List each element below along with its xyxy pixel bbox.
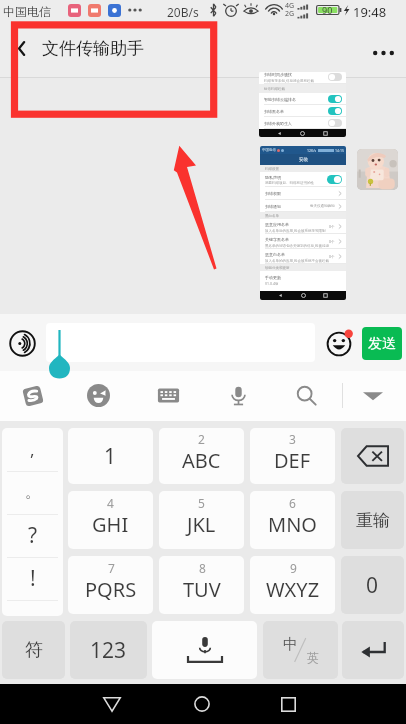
button[interactable]: Hide keyboard — [358, 381, 387, 410]
staticText: 20B/s — [167, 4, 199, 20]
staticText: 每天仅通知确知 — [310, 204, 335, 208]
button[interactable]: 5 — [159, 491, 244, 549]
staticText: 2G — [285, 9, 295, 19]
staticText: 扫描设置 — [265, 167, 279, 171]
button[interactable]: Back — [88, 684, 135, 724]
button[interactable]: Voice input — [6, 327, 38, 359]
staticText: 扫描外构陌生人 — [264, 121, 292, 126]
staticText: 中国电信 — [262, 148, 276, 152]
staticText: 手动更新 — [265, 275, 281, 280]
staticText: 恶意应用名单 — [265, 222, 289, 227]
staticText: JKL — [187, 511, 216, 538]
button[interactable]: 8 — [159, 556, 244, 614]
staticText: 3 — [289, 431, 296, 447]
button[interactable]: 6 — [250, 491, 335, 549]
staticText: 0个 — [329, 239, 335, 244]
button[interactable]: Emoji — [324, 327, 356, 359]
staticText: 中国电信 — [3, 4, 51, 19]
staticText: 安装 — [299, 157, 308, 163]
staticText: GHI — [92, 511, 129, 538]
staticText: 9 — [290, 560, 297, 576]
button[interactable]: 0 — [341, 556, 404, 614]
staticText: 智能分类和更新 — [265, 266, 290, 270]
staticText: 0个 — [329, 254, 335, 259]
staticText: 短信扫描拦截 — [264, 87, 285, 91]
staticText: 发送 — [368, 335, 396, 353]
staticText: 符 — [25, 639, 43, 662]
staticText: 中 — [283, 635, 298, 654]
staticText: 文件传输助手 — [42, 38, 144, 59]
button[interactable]: 发送 — [362, 327, 402, 360]
staticText: 14:15 — [335, 148, 344, 153]
button[interactable]: Enter — [342, 621, 404, 679]
button[interactable]: 4 — [68, 491, 153, 549]
staticText: 关键字黑名单 — [265, 237, 289, 242]
staticText: 123 — [90, 636, 127, 665]
staticText: ! — [30, 564, 36, 593]
staticText: V1.0.4版 — [265, 281, 279, 286]
button[interactable]: Space — [152, 621, 257, 679]
button[interactable]: More options — [360, 30, 406, 76]
button[interactable]: 2 — [159, 428, 244, 484]
button[interactable]: 符 — [2, 621, 65, 679]
staticText: 12K/s — [307, 148, 317, 153]
staticText: 扫描时同步骚扰 — [264, 72, 292, 77]
button[interactable]: 1 — [68, 428, 153, 484]
staticText: ? — [28, 521, 38, 550]
staticText: ABC — [182, 447, 221, 474]
staticText: 加入名单的的应用,将会被系统不会被拦截 — [265, 258, 329, 263]
staticText: MNO — [268, 511, 317, 538]
staticText: 重输 — [356, 510, 390, 531]
other: Space — [188, 637, 222, 663]
staticText: 隐私声明 — [265, 175, 281, 180]
button[interactable]: 9 — [250, 556, 335, 614]
staticText: TUV — [183, 576, 221, 603]
other: Backspace — [357, 445, 389, 467]
staticText: 。 — [25, 483, 40, 502]
staticText: WXYZ — [266, 576, 320, 603]
staticText: , — [30, 438, 35, 461]
button[interactable]: Keyboard layout — [154, 381, 183, 410]
button[interactable]: 重输 — [341, 491, 404, 549]
staticText: 5 — [198, 495, 205, 511]
button[interactable]: , — [2, 428, 63, 616]
button[interactable]: 7 — [68, 556, 153, 614]
staticText: 智能扫描云端排名 — [264, 97, 296, 102]
button[interactable]: Backspace — [341, 428, 404, 484]
staticText: 我要扫描项目、扫描有证书的性 — [265, 181, 314, 185]
button[interactable]: Voice input — [224, 381, 253, 410]
staticText: DEF — [274, 447, 311, 474]
staticText: 英 — [307, 650, 319, 665]
button[interactable]: 中 — [263, 621, 338, 679]
staticText: 1 — [104, 442, 117, 471]
staticText: 19:48 — [353, 3, 387, 21]
button[interactable]: Home — [178, 684, 225, 724]
staticText: 扫描权限 — [265, 191, 281, 196]
button[interactable]: 中国电信 — [260, 146, 346, 300]
staticText: 2 — [198, 431, 205, 447]
staticText: 4G — [285, 1, 295, 11]
other: Back — [17, 39, 27, 58]
staticText: 黑白名单 — [265, 214, 279, 218]
staticText: 恶意白名单 — [265, 252, 285, 257]
button[interactable]: Search — [292, 381, 321, 410]
button[interactable] — [357, 149, 398, 190]
button[interactable]: Back — [0, 20, 406, 77]
button[interactable]: Emoji panel — [84, 381, 113, 410]
button[interactable]: 扫描时同步骚扰 — [259, 72, 346, 137]
staticText: PQRS — [85, 576, 137, 603]
staticText: 扫描黑名单 — [264, 109, 284, 114]
button[interactable]: Recent apps — [265, 684, 312, 724]
staticText: 加入名单后的应用,将会被系统等等限制 — [265, 228, 326, 233]
staticText: 8 — [199, 560, 206, 576]
button[interactable]: Sogou input settings — [18, 381, 47, 410]
staticText: 0 — [366, 571, 379, 600]
button[interactable]: 3 — [250, 428, 335, 484]
staticText: 0个 — [329, 224, 335, 229]
staticText: 6 — [289, 495, 296, 511]
other: Enter — [360, 640, 386, 660]
button[interactable]: 123 — [70, 621, 147, 679]
button[interactable] — [46, 323, 315, 362]
staticText: 扫描有等未知,信息还会是有拦截 — [264, 78, 314, 83]
staticText: 7 — [108, 560, 115, 576]
